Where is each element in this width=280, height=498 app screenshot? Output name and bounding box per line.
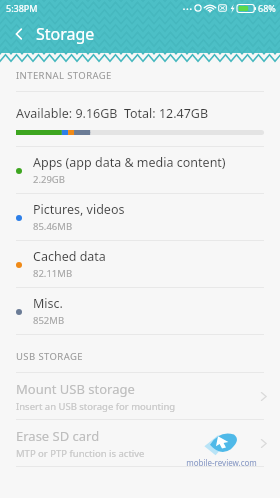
staticText: Pictures, videos <box>33 201 125 218</box>
staticText: 68% <box>258 2 276 14</box>
button[interactable]: Mount USB storage <box>0 373 280 419</box>
button[interactable]: Cached data <box>0 241 280 287</box>
staticText: Storage <box>36 23 95 45</box>
staticText: 5:38PM <box>6 2 38 14</box>
button[interactable]: Available: 9.16GB Total: 12.47GB <box>0 92 280 146</box>
button[interactable]: Back <box>6 20 34 48</box>
staticText: MTP or PTP function is active <box>16 447 145 460</box>
staticText: Apps (app data & media content) <box>33 154 226 171</box>
button[interactable]: Erase SD card <box>0 420 280 466</box>
staticText: Erase SD card <box>16 427 100 445</box>
staticText: Insert an USB storage for mounting <box>16 400 176 413</box>
staticText: 2.29GB <box>33 173 65 186</box>
staticText: 82.11MB <box>33 267 73 280</box>
button[interactable]: Misc. <box>0 288 280 334</box>
staticText: Available: 9.16GB Total: 12.47GB <box>16 105 209 122</box>
staticText: INTERNAL STORAGE <box>16 69 112 82</box>
button[interactable]: Apps (app data & media content) <box>0 147 280 193</box>
button[interactable]: Pictures, videos <box>0 194 280 240</box>
staticText: Mount USB storage <box>16 380 135 398</box>
staticText: Cached data <box>33 248 106 265</box>
staticText: 852MB <box>33 314 65 327</box>
staticText: USB STORAGE <box>16 350 83 363</box>
staticText: mobile-review.com <box>186 457 257 468</box>
staticText: 85.46MB <box>33 220 73 233</box>
staticText: Misc. <box>33 295 63 312</box>
